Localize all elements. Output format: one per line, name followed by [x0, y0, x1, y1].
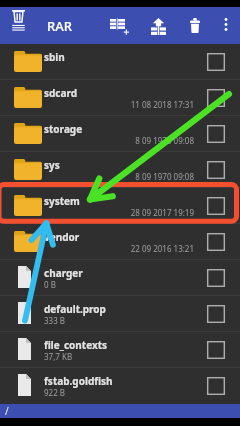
button[interactable]: Select storage	[192, 116, 240, 151]
staticText: 37,7 KB	[44, 351, 192, 362]
staticText: system	[44, 194, 80, 208]
staticText: sys	[44, 158, 60, 172]
button[interactable]: Select system	[192, 188, 240, 223]
button[interactable]: charger	[0, 260, 240, 295]
button[interactable]: sbin	[0, 44, 240, 79]
button[interactable]: Select vendor	[192, 224, 240, 259]
staticText: storage	[44, 122, 83, 136]
button[interactable]: Open navigation drawer	[6, 7, 31, 37]
staticText: sdcard	[44, 86, 78, 100]
staticText: 0 B	[44, 279, 192, 290]
button[interactable]: Select default.prop	[192, 296, 240, 331]
button[interactable]: More options	[213, 7, 238, 44]
staticText: sbin	[44, 50, 65, 64]
staticText: fstab.goldfish	[44, 374, 113, 388]
staticText: 8 09 1970 09:08	[46, 171, 194, 182]
button[interactable]: system	[0, 188, 240, 223]
button[interactable]: Select file_contexts	[192, 332, 240, 367]
button[interactable]: file_contexts	[0, 332, 240, 367]
staticText: vendor	[44, 230, 80, 244]
staticText: 333 B	[44, 315, 192, 326]
staticText: default.prop	[44, 302, 106, 316]
staticText: 22 09 2016 13:21	[46, 243, 194, 254]
staticText: /	[5, 404, 9, 418]
button[interactable]: Select sys	[192, 152, 240, 187]
button[interactable]: Extract	[142, 7, 172, 44]
button[interactable]: Add to archive	[102, 7, 132, 44]
button[interactable]: /	[0, 404, 240, 418]
button[interactable]: sdcard	[0, 80, 240, 115]
staticText: RAR	[47, 17, 72, 35]
button[interactable]: Select sdcard	[192, 80, 240, 115]
staticText: 11 08 2018 17:31	[46, 99, 194, 110]
button[interactable]: sys	[0, 152, 240, 187]
staticText: file_contexts	[44, 338, 108, 352]
staticText: 28 09 2017 19:19	[46, 207, 194, 218]
staticText: charger	[44, 266, 83, 280]
button[interactable]: storage	[0, 116, 240, 151]
button[interactable]: vendor	[0, 224, 240, 259]
button[interactable]: Select charger	[192, 260, 240, 295]
button[interactable]: default.prop	[0, 296, 240, 331]
staticText: 922 B	[44, 387, 192, 398]
button[interactable]: Delete	[183, 7, 208, 44]
button[interactable]: fstab.goldfish	[0, 368, 240, 403]
button[interactable]: Select sbin	[192, 44, 240, 79]
staticText: 8 09 1970 09:08	[46, 135, 194, 146]
button[interactable]: Select fstab.goldfish	[192, 368, 240, 403]
